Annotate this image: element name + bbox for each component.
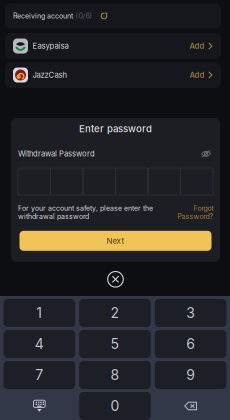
staticText: Easypaisa: [32, 41, 68, 51]
staticText: 2: [110, 304, 119, 321]
button[interactable]: 7: [3, 361, 75, 389]
staticText: Receiving account: [13, 12, 73, 20]
button[interactable]: 8: [79, 361, 151, 389]
staticText: For your account safety, please enter th…: [18, 204, 153, 221]
button[interactable]: Next: [19, 231, 211, 251]
button[interactable]: 2: [79, 299, 151, 327]
staticText: JazzCash: [32, 70, 67, 80]
staticText: Withdrawal Password: [18, 149, 95, 158]
button[interactable]: Easypaisa: [5, 33, 221, 59]
staticText: 6: [186, 335, 195, 352]
button[interactable]: Delete: [155, 392, 226, 420]
staticText: Add: [190, 70, 205, 80]
staticText: 4: [35, 335, 44, 352]
button[interactable]: 9: [155, 361, 226, 389]
staticText: (0/6): [75, 12, 92, 20]
staticText: Next: [106, 236, 124, 245]
staticText: 7: [35, 366, 43, 383]
button[interactable]: 4: [3, 330, 75, 358]
button[interactable]: Forgot Password?: [173, 204, 213, 221]
button[interactable]: 0: [79, 392, 151, 420]
staticText: 8: [110, 366, 119, 383]
staticText: Add: [190, 41, 205, 51]
button[interactable]: Close: [107, 271, 124, 288]
button[interactable]: 5: [79, 330, 151, 358]
staticText: 0: [110, 397, 119, 414]
staticText: 5: [110, 335, 119, 352]
button[interactable]: Hide keyboard: [3, 392, 75, 420]
staticText: Enter password: [79, 123, 152, 135]
button[interactable]: 3: [155, 299, 226, 327]
staticText: Forgot Password?: [177, 204, 213, 221]
button[interactable]: 1: [3, 299, 75, 327]
button[interactable]: 6: [155, 330, 226, 358]
staticText: 3: [186, 304, 195, 321]
button[interactable]: JazzCash: [5, 62, 221, 88]
staticText: 1: [36, 304, 42, 321]
staticText: 9: [186, 366, 195, 383]
button[interactable]: Show password: [199, 148, 213, 160]
